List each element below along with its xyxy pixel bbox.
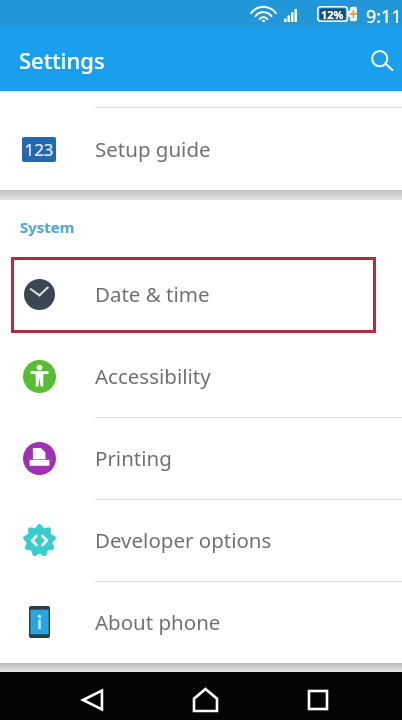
button[interactable]: Developer options <box>0 499 402 581</box>
button[interactable]: Date & time <box>0 253 402 335</box>
button[interactable]: Search <box>358 38 402 82</box>
button[interactable]: Recents <box>294 676 342 720</box>
staticText: 12% <box>321 7 344 22</box>
button[interactable]: 123 <box>0 108 402 190</box>
staticText: System <box>20 217 75 237</box>
button[interactable]: Printing <box>0 417 402 499</box>
staticText: 123 <box>24 138 54 161</box>
staticText: Setup guide <box>95 135 211 163</box>
staticText: Printing <box>95 444 172 472</box>
staticText: About phone <box>95 608 221 636</box>
button[interactable]: Accessibility <box>0 335 402 417</box>
staticText: Accessibility <box>95 362 211 390</box>
staticText: Developer options <box>95 526 272 554</box>
staticText: 9:11 <box>366 4 402 29</box>
button[interactable]: Back <box>68 676 116 720</box>
button[interactable]: Home <box>181 676 229 720</box>
button[interactable]: About phone <box>0 581 402 663</box>
staticText: Date & time <box>95 280 210 308</box>
staticText: Settings <box>19 45 105 75</box>
